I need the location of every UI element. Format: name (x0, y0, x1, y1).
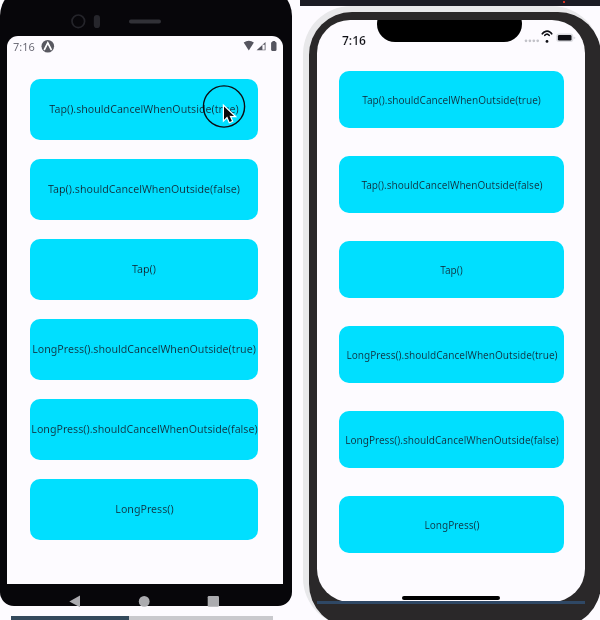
button[interactable]: Tap() (339, 241, 564, 298)
staticText: Tap().shouldCancelWhenOutside(true) (362, 93, 541, 107)
staticText: 7:16 (342, 32, 366, 48)
staticText: Tap().shouldCancelWhenOutside(true) (49, 102, 239, 117)
button[interactable]: Tap() (30, 239, 258, 300)
staticText: LongPress() (115, 502, 174, 517)
button[interactable]: LongPress() (30, 479, 258, 540)
button[interactable]: LongPress() (339, 496, 564, 553)
staticText: Tap().shouldCancelWhenOutside(false) (48, 182, 240, 197)
button[interactable]: Tap().shouldCancelWhenOutside(true) (30, 79, 258, 140)
staticText: LongPress().shouldCancelWhenOutside(true… (346, 348, 558, 362)
button[interactable]: Tap().shouldCancelWhenOutside(false) (30, 159, 258, 220)
staticText: Tap().shouldCancelWhenOutside(false) (361, 178, 543, 192)
button[interactable]: Tap().shouldCancelWhenOutside(true) (339, 71, 564, 128)
staticText: LongPress().shouldCancelWhenOutside(true… (32, 342, 256, 357)
staticText: LongPress() (424, 518, 480, 532)
button[interactable]: Tap().shouldCancelWhenOutside(false) (339, 156, 564, 213)
staticText: Tap() (440, 263, 463, 277)
staticText: Tap() (132, 262, 156, 277)
staticText: 7:16 (13, 39, 35, 54)
button[interactable]: LongPress().shouldCancelWhenOutside(fals… (339, 411, 564, 468)
staticText: LongPress().shouldCancelWhenOutside(fals… (31, 422, 258, 437)
button[interactable]: LongPress().shouldCancelWhenOutside(true… (339, 326, 564, 383)
button[interactable]: LongPress().shouldCancelWhenOutside(fals… (30, 399, 258, 460)
button[interactable]: LongPress().shouldCancelWhenOutside(true… (30, 319, 258, 380)
staticText: LongPress().shouldCancelWhenOutside(fals… (345, 433, 559, 447)
